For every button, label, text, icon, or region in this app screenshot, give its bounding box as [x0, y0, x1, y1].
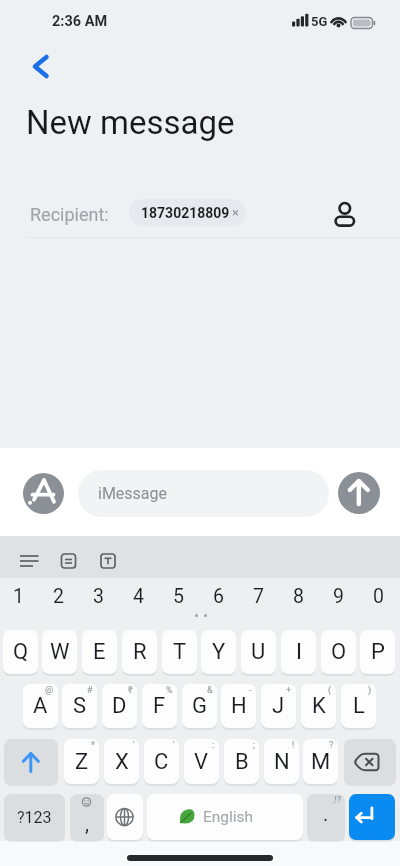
button[interactable]: N: [264, 739, 299, 784]
button[interactable]: X: [104, 739, 139, 784]
staticText: L: [353, 693, 365, 719]
button[interactable]: E: [82, 630, 117, 674]
button[interactable]: L: [341, 684, 376, 728]
button[interactable]: [24, 48, 60, 84]
button[interactable]: 0: [358, 582, 398, 610]
button[interactable]: 8: [278, 582, 318, 610]
staticText: S: [73, 693, 87, 719]
staticText: O: [331, 639, 347, 665]
staticText: M: [311, 749, 331, 775]
button[interactable]: [14, 548, 44, 574]
button[interactable]: Z: [64, 739, 99, 784]
staticText: A: [33, 693, 48, 719]
staticText: ': [133, 740, 135, 751]
staticText: Q: [13, 639, 29, 665]
button[interactable]: 2: [38, 582, 78, 610]
staticText: H: [231, 693, 247, 719]
button[interactable]: V: [184, 739, 219, 784]
button[interactable]: 6: [198, 582, 238, 610]
staticText: K: [312, 693, 326, 719]
staticText: :: [212, 740, 215, 751]
button[interactable]: H: [221, 684, 256, 728]
staticText: W: [50, 639, 70, 665]
button[interactable]: T: [162, 630, 197, 674]
staticText: B: [235, 749, 249, 775]
button[interactable]: U: [241, 630, 276, 674]
button[interactable]: Q: [3, 630, 38, 674]
staticText: 7: [253, 585, 264, 608]
button[interactable]: 9: [318, 582, 358, 610]
button[interactable]: 3: [78, 582, 118, 610]
staticText: &: [207, 685, 213, 696]
button[interactable]: [338, 472, 380, 514]
button[interactable]: K: [301, 684, 336, 728]
button[interactable]: B: [224, 739, 259, 784]
staticText: G: [192, 693, 207, 719]
staticText: 9: [333, 585, 344, 608]
button[interactable]: S: [62, 684, 97, 728]
button[interactable]: ,: [70, 794, 104, 840]
staticText: Z: [75, 749, 89, 775]
button[interactable]: [349, 794, 395, 840]
button[interactable]: [96, 548, 122, 574]
staticText: 2:36 AM: [52, 13, 108, 30]
staticText: V: [194, 749, 209, 775]
button[interactable]: F: [142, 684, 177, 728]
button[interactable]: [330, 196, 360, 234]
staticText: !: [292, 740, 295, 751]
button[interactable]: .: [307, 794, 345, 840]
staticText: 5G: [311, 14, 328, 29]
button[interactable]: [23, 473, 64, 514]
staticText: 2: [53, 585, 64, 608]
staticText: 0: [373, 585, 384, 608]
button[interactable]: I: [281, 630, 316, 674]
button[interactable]: 18730218809: [129, 199, 246, 226]
button[interactable]: D: [102, 684, 137, 728]
button[interactable]: [107, 794, 143, 840]
button[interactable]: C: [144, 739, 179, 784]
button[interactable]: [56, 548, 82, 574]
staticText: ₹: [128, 685, 133, 696]
button[interactable]: W: [42, 630, 77, 674]
staticText: 1: [13, 585, 24, 608]
button[interactable]: 5: [158, 582, 198, 610]
staticText: T: [173, 639, 187, 665]
staticText: #: [87, 685, 93, 696]
staticText: iMessage: [98, 484, 168, 503]
staticText: ,: [85, 812, 89, 835]
button[interactable]: J: [261, 684, 296, 728]
button[interactable]: iMessage: [78, 470, 329, 517]
button[interactable]: G: [182, 684, 217, 728]
staticText: J: [272, 693, 285, 719]
staticText: 6: [213, 585, 224, 608]
button[interactable]: A: [23, 684, 58, 728]
button[interactable]: 4: [118, 582, 158, 610]
staticText: ×: [232, 205, 239, 220]
button[interactable]: [4, 739, 58, 784]
staticText: 5: [173, 585, 184, 608]
button[interactable]: 1: [0, 582, 38, 610]
staticText: 3: [93, 585, 104, 608]
staticText: U: [251, 639, 266, 665]
button[interactable]: P: [360, 630, 395, 674]
staticText: New message: [26, 103, 235, 142]
button[interactable]: O: [321, 630, 356, 674]
staticText: Recipient:: [30, 204, 109, 225]
staticText: N: [274, 749, 290, 775]
staticText: X: [115, 749, 129, 775]
button[interactable]: M: [303, 739, 338, 784]
button[interactable]: R: [122, 630, 157, 674]
staticText: Y: [212, 639, 226, 665]
staticText: ): [368, 685, 372, 696]
staticText: 4: [133, 585, 144, 608]
staticText: ;: [253, 740, 255, 751]
staticText: P: [371, 639, 385, 665]
button[interactable]: ?123: [4, 794, 65, 840]
button[interactable]: [344, 739, 396, 784]
staticText: ?123: [17, 808, 52, 827]
button[interactable]: Y: [201, 630, 236, 674]
button[interactable]: English: [147, 794, 303, 840]
staticText: (: [328, 685, 332, 696]
staticText: I: [296, 639, 302, 665]
button[interactable]: 7: [238, 582, 278, 610]
